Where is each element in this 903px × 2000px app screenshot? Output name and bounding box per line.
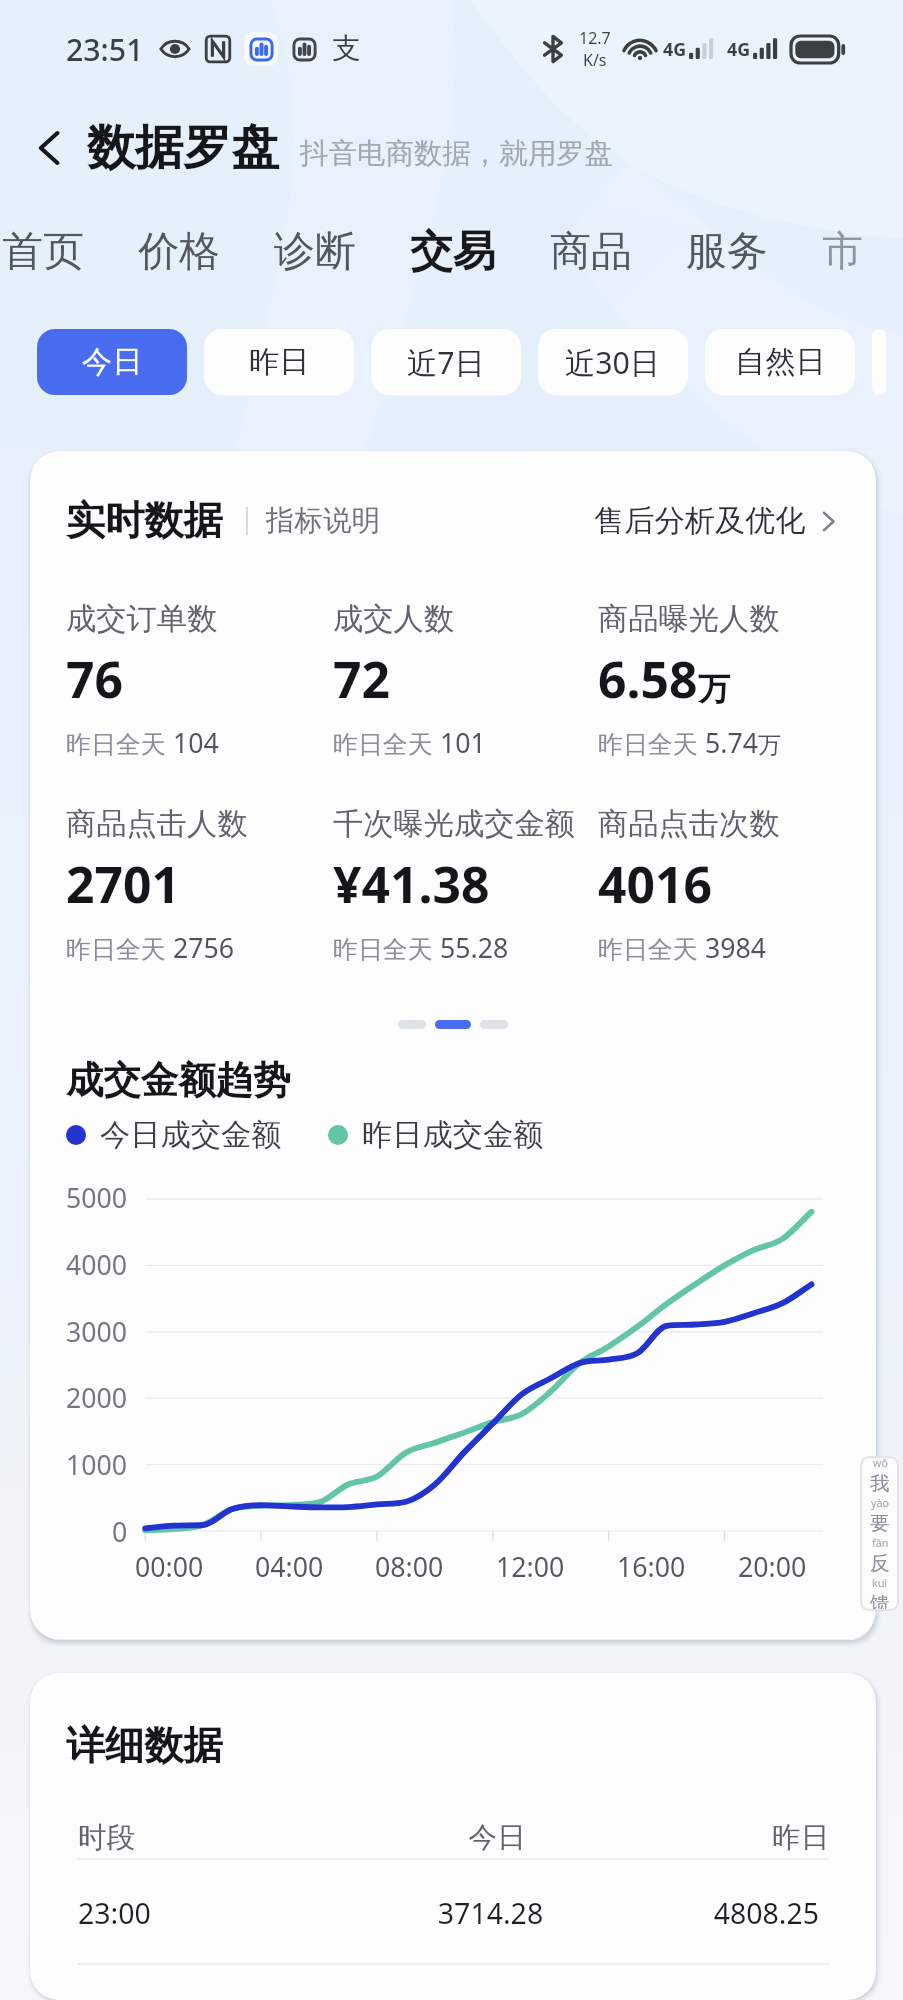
staticText: 数据罗盘 — [87, 118, 280, 179]
staticText: 交易 — [410, 225, 496, 279]
staticText: 抖音电商数据，就用罗盘 — [300, 136, 614, 172]
button[interactable]: 当前页 — [435, 1020, 471, 1029]
button[interactable]: 首页 — [2, 226, 84, 278]
staticText: fǎn — [872, 1536, 889, 1551]
staticText: wǒ — [873, 1456, 888, 1471]
staticText: 4G — [727, 37, 751, 61]
staticText: yào — [871, 1496, 889, 1511]
staticText: K/s — [583, 49, 607, 71]
staticText: 昨日全天 — [333, 931, 440, 965]
staticText: 72 — [333, 645, 391, 713]
staticText: 自然日 — [735, 343, 826, 381]
button[interactable]: 昨日 — [204, 329, 354, 395]
staticText: 千次曝光成交金额 — [333, 805, 575, 843]
button[interactable]: 近30日 — [538, 329, 688, 395]
staticText: 反 — [870, 1551, 890, 1576]
button[interactable]: 服务 — [686, 226, 768, 278]
staticText: 详细数据 — [66, 1721, 223, 1770]
staticText: 2701 — [66, 850, 181, 918]
button[interactable]: 售后分析及优化 — [594, 502, 840, 540]
staticText: 市场 — [822, 226, 851, 278]
staticText: 1000 — [66, 1446, 128, 1482]
staticText: 昨日成交金额 — [362, 1116, 544, 1154]
staticText: 今日 — [374, 1820, 620, 1856]
staticText: 4000 — [66, 1246, 128, 1282]
staticText: 5000 — [66, 1179, 128, 1215]
staticText: 商品曝光人数 — [598, 600, 780, 638]
staticText: 04:00 — [255, 1548, 324, 1584]
staticText: 55.28 — [440, 929, 509, 965]
button[interactable]: 商品 — [550, 226, 632, 278]
staticText: 00:00 — [135, 1548, 204, 1584]
staticText: 0 — [112, 1513, 128, 1549]
staticText: 3984 — [705, 929, 767, 965]
staticText: 近30日 — [565, 342, 661, 383]
button[interactable]: 切换页 — [398, 1020, 426, 1029]
button[interactable]: 今日 — [37, 329, 187, 395]
staticText: 馈 — [870, 1591, 890, 1611]
button[interactable]: 商品曝光人数 — [598, 600, 840, 760]
button[interactable]: 23:00 — [66, 1860, 840, 1963]
staticText: 16:00 — [617, 1548, 686, 1584]
staticText: 昨日 — [249, 343, 310, 381]
button[interactable]: 交易 — [410, 225, 496, 279]
staticText: 12:00 — [496, 1548, 565, 1584]
staticText: 3714.28 — [369, 1894, 612, 1933]
button[interactable]: 我要反馈 — [860, 1456, 899, 1611]
staticText: 昨日全天 — [598, 726, 705, 760]
button[interactable]: 近7日 — [371, 329, 521, 395]
staticText: 4016 — [598, 850, 713, 918]
staticText: 2756 — [173, 929, 235, 965]
staticText: 昨日全天 — [66, 931, 173, 965]
staticText: 服务 — [686, 226, 768, 278]
staticText: kuì — [872, 1576, 888, 1591]
staticText: 昨日全天 — [333, 726, 440, 760]
staticText: 23:51 — [66, 29, 144, 70]
button[interactable]: 千次曝光成交金额 — [333, 805, 598, 965]
button[interactable]: 市场 — [822, 226, 851, 278]
staticText: 要 — [870, 1511, 890, 1536]
staticText: 万 — [698, 669, 731, 709]
staticText: 76 — [66, 645, 124, 713]
staticText: 08:00 — [375, 1548, 444, 1584]
staticText: 成交订单数 — [66, 600, 218, 638]
staticText: 3000 — [66, 1313, 128, 1349]
staticText: 101 — [440, 724, 486, 760]
staticText: 首页 — [2, 226, 84, 278]
button[interactable]: Back — [18, 116, 82, 180]
button[interactable]: 自然日 — [705, 329, 855, 395]
staticText: 23:00 — [78, 1894, 369, 1933]
button[interactable]: 指标说明 — [266, 503, 380, 539]
button[interactable]: 诊断 — [274, 226, 356, 278]
staticText: 近7日 — [407, 342, 485, 383]
button[interactable]: 切换页 — [480, 1020, 508, 1029]
staticText: 成交金额趋势 — [66, 1057, 291, 1104]
staticText: 诊断 — [274, 226, 356, 278]
staticText: ¥41.38 — [333, 850, 490, 918]
staticText: 昨日 — [620, 1820, 829, 1856]
staticText: 12.7 — [579, 27, 611, 49]
staticText: 5.74 — [705, 724, 758, 760]
staticText: 万 — [758, 731, 782, 760]
staticText: 支 — [332, 31, 361, 67]
staticText: 昨日全天 — [598, 931, 705, 965]
button[interactable]: 成交订单数 — [66, 600, 333, 760]
staticText: 我 — [870, 1471, 890, 1496]
staticText: 4G — [663, 37, 687, 61]
button[interactable] — [872, 329, 886, 395]
staticText: 时段 — [78, 1820, 374, 1856]
staticText: 价格 — [138, 226, 220, 278]
button[interactable]: 商品点击人数 — [66, 805, 333, 965]
staticText: 售后分析及优化 — [594, 502, 806, 540]
staticText: 商品点击人数 — [66, 805, 248, 843]
button[interactable]: 成交人数 — [333, 600, 598, 760]
staticText: 104 — [173, 724, 219, 760]
staticText: 昨日全天 — [66, 726, 173, 760]
button[interactable]: 商品点击次数 — [598, 805, 840, 965]
staticText: 6.58 — [598, 645, 698, 713]
button[interactable]: 价格 — [138, 226, 220, 278]
staticText: 今日成交金额 — [100, 1116, 282, 1154]
staticText: 今日 — [82, 343, 143, 381]
staticText: 商品点击次数 — [598, 805, 780, 843]
